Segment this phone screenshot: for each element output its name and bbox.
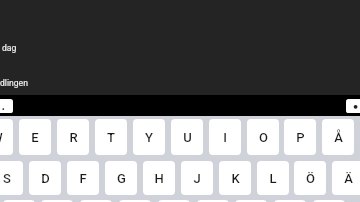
button[interactable]: B <box>158 200 190 202</box>
button[interactable]: P <box>284 119 316 155</box>
button[interactable]: . <box>313 200 345 202</box>
staticText: H <box>154 171 164 186</box>
button[interactable]: Keyboard options <box>0 99 13 113</box>
staticText: K <box>231 171 240 186</box>
button[interactable]: O <box>247 119 279 155</box>
button[interactable]: F <box>67 161 99 195</box>
button[interactable]: Settings <box>346 99 360 113</box>
button[interactable]: X <box>41 200 73 202</box>
staticText: Ö <box>306 171 315 186</box>
button[interactable]: Y <box>133 119 165 155</box>
button[interactable]: E <box>19 119 51 155</box>
staticText: W <box>0 130 3 145</box>
button[interactable]: Ä <box>332 161 360 195</box>
staticText: O <box>259 130 268 145</box>
button[interactable]: H <box>143 161 175 195</box>
staticText: E <box>31 130 39 145</box>
staticText: Y <box>145 130 153 145</box>
button[interactable]: I <box>209 119 241 155</box>
button[interactable]: Å <box>322 119 354 155</box>
staticText: Å <box>334 130 343 145</box>
staticText: dlingen <box>0 78 28 88</box>
button[interactable]: D <box>29 161 61 195</box>
button[interactable]: V <box>119 200 151 202</box>
button[interactable]: T <box>95 119 127 155</box>
staticText: F <box>79 171 87 186</box>
staticText: J <box>193 171 201 186</box>
staticText: S <box>3 171 11 186</box>
staticText: P <box>296 130 305 145</box>
button[interactable]: S <box>0 161 23 195</box>
staticText: I <box>223 130 227 145</box>
button[interactable]: R <box>57 119 89 155</box>
button[interactable]: W <box>0 119 13 155</box>
button[interactable]: M <box>235 200 267 202</box>
staticText: Ä <box>344 171 353 186</box>
button[interactable]: , <box>274 200 306 202</box>
button[interactable]: J <box>181 161 213 195</box>
button[interactable]: Ö <box>294 161 326 195</box>
button[interactable]: Z <box>3 200 35 202</box>
staticText: G <box>117 171 126 186</box>
staticText: U <box>183 130 192 145</box>
staticText: R <box>69 130 78 145</box>
button[interactable]: L <box>257 161 289 195</box>
button[interactable]: C <box>80 200 112 202</box>
staticText: L <box>269 171 277 186</box>
button[interactable]: N <box>197 200 229 202</box>
button[interactable]: K <box>219 161 251 195</box>
staticText: dag <box>2 43 17 53</box>
staticText: T <box>107 130 115 145</box>
button[interactable]: U <box>171 119 203 155</box>
staticText: D <box>41 171 50 186</box>
button[interactable]: G <box>105 161 137 195</box>
